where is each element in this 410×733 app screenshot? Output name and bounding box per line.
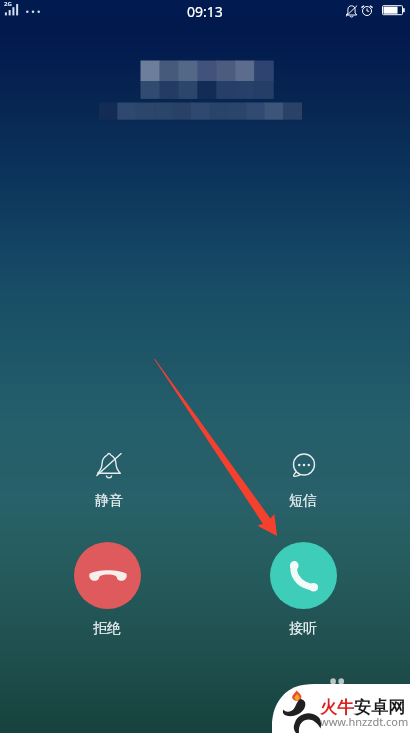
staticText: www.hnzzdt.com — [320, 714, 409, 729]
staticText: 接听 — [289, 620, 317, 638]
button[interactable]: 短信 — [263, 451, 343, 510]
staticText: 2G — [4, 0, 12, 8]
button[interactable]: 拒绝 — [57, 542, 157, 638]
button[interactable]: 静音 — [69, 451, 149, 510]
button[interactable]: 接听 — [253, 542, 353, 638]
staticText: 拒绝 — [93, 620, 121, 638]
staticText: 09:13 — [187, 2, 223, 21]
staticText: 静音 — [95, 492, 123, 510]
staticText: 安卓网 — [354, 697, 405, 718]
staticText: 短信 — [289, 492, 317, 510]
staticText: 火牛 — [320, 697, 354, 718]
